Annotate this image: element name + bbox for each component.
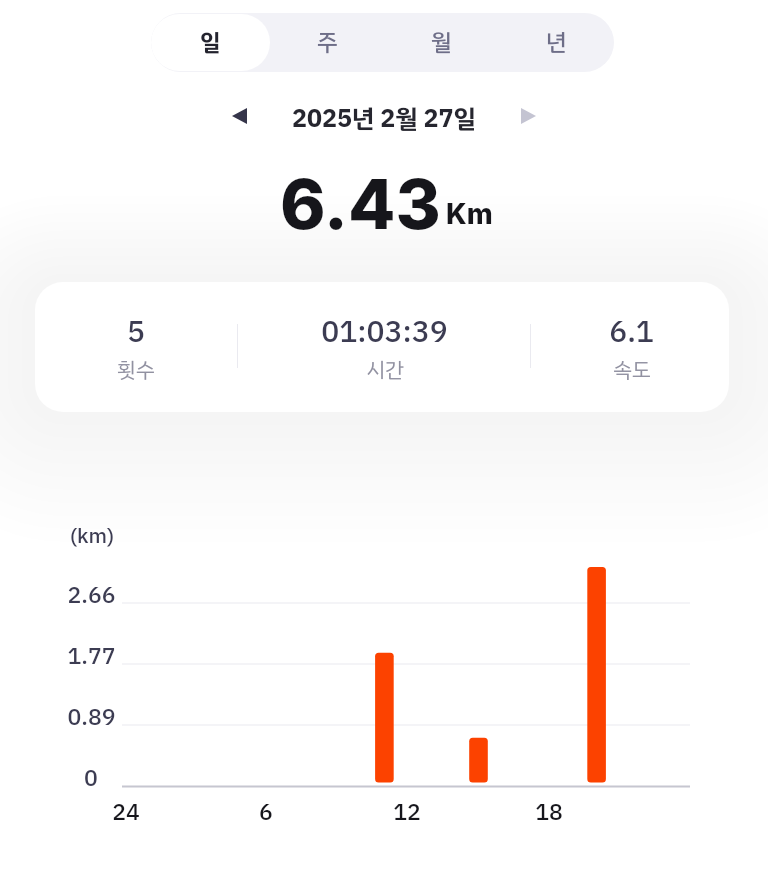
button[interactable]: 01:03:39 bbox=[304, 309, 464, 385]
staticText: 년 bbox=[546, 25, 567, 60]
button[interactable]: 월 bbox=[384, 14, 499, 71]
staticText: 횟수 bbox=[117, 354, 155, 385]
staticText: 24 bbox=[112, 795, 140, 830]
staticText: 6.1 bbox=[609, 309, 654, 354]
staticText: 주 bbox=[317, 25, 338, 60]
button[interactable]: Next day bbox=[504, 92, 552, 140]
staticText: 2025년 2월 27일 bbox=[292, 100, 476, 138]
staticText: 12 bbox=[393, 795, 421, 830]
button[interactable]: 주 bbox=[270, 14, 384, 71]
button[interactable]: 일 bbox=[151, 14, 270, 71]
staticText: 6 bbox=[259, 795, 273, 830]
staticText: 2.66 bbox=[67, 578, 116, 613]
staticText: 1.77 bbox=[67, 639, 116, 674]
staticText: 월 bbox=[431, 25, 452, 60]
button[interactable]: Previous day bbox=[215, 92, 263, 140]
button[interactable]: 5 bbox=[56, 309, 216, 385]
staticText: 시간 bbox=[366, 354, 404, 385]
staticText: 속도 bbox=[613, 354, 651, 385]
button[interactable]: 6.1 bbox=[551, 309, 711, 385]
staticText: Km bbox=[446, 197, 493, 231]
staticText: 일 bbox=[200, 25, 221, 60]
staticText: 0.89 bbox=[67, 700, 116, 735]
staticText: 01:03:39 bbox=[321, 309, 448, 354]
staticText: 18 bbox=[535, 795, 563, 830]
button[interactable]: 년 bbox=[499, 14, 614, 71]
staticText: 0 bbox=[84, 761, 98, 796]
staticText: (km) bbox=[70, 520, 115, 552]
staticText: 5 bbox=[127, 309, 145, 354]
staticText: 6.43 bbox=[280, 162, 441, 245]
